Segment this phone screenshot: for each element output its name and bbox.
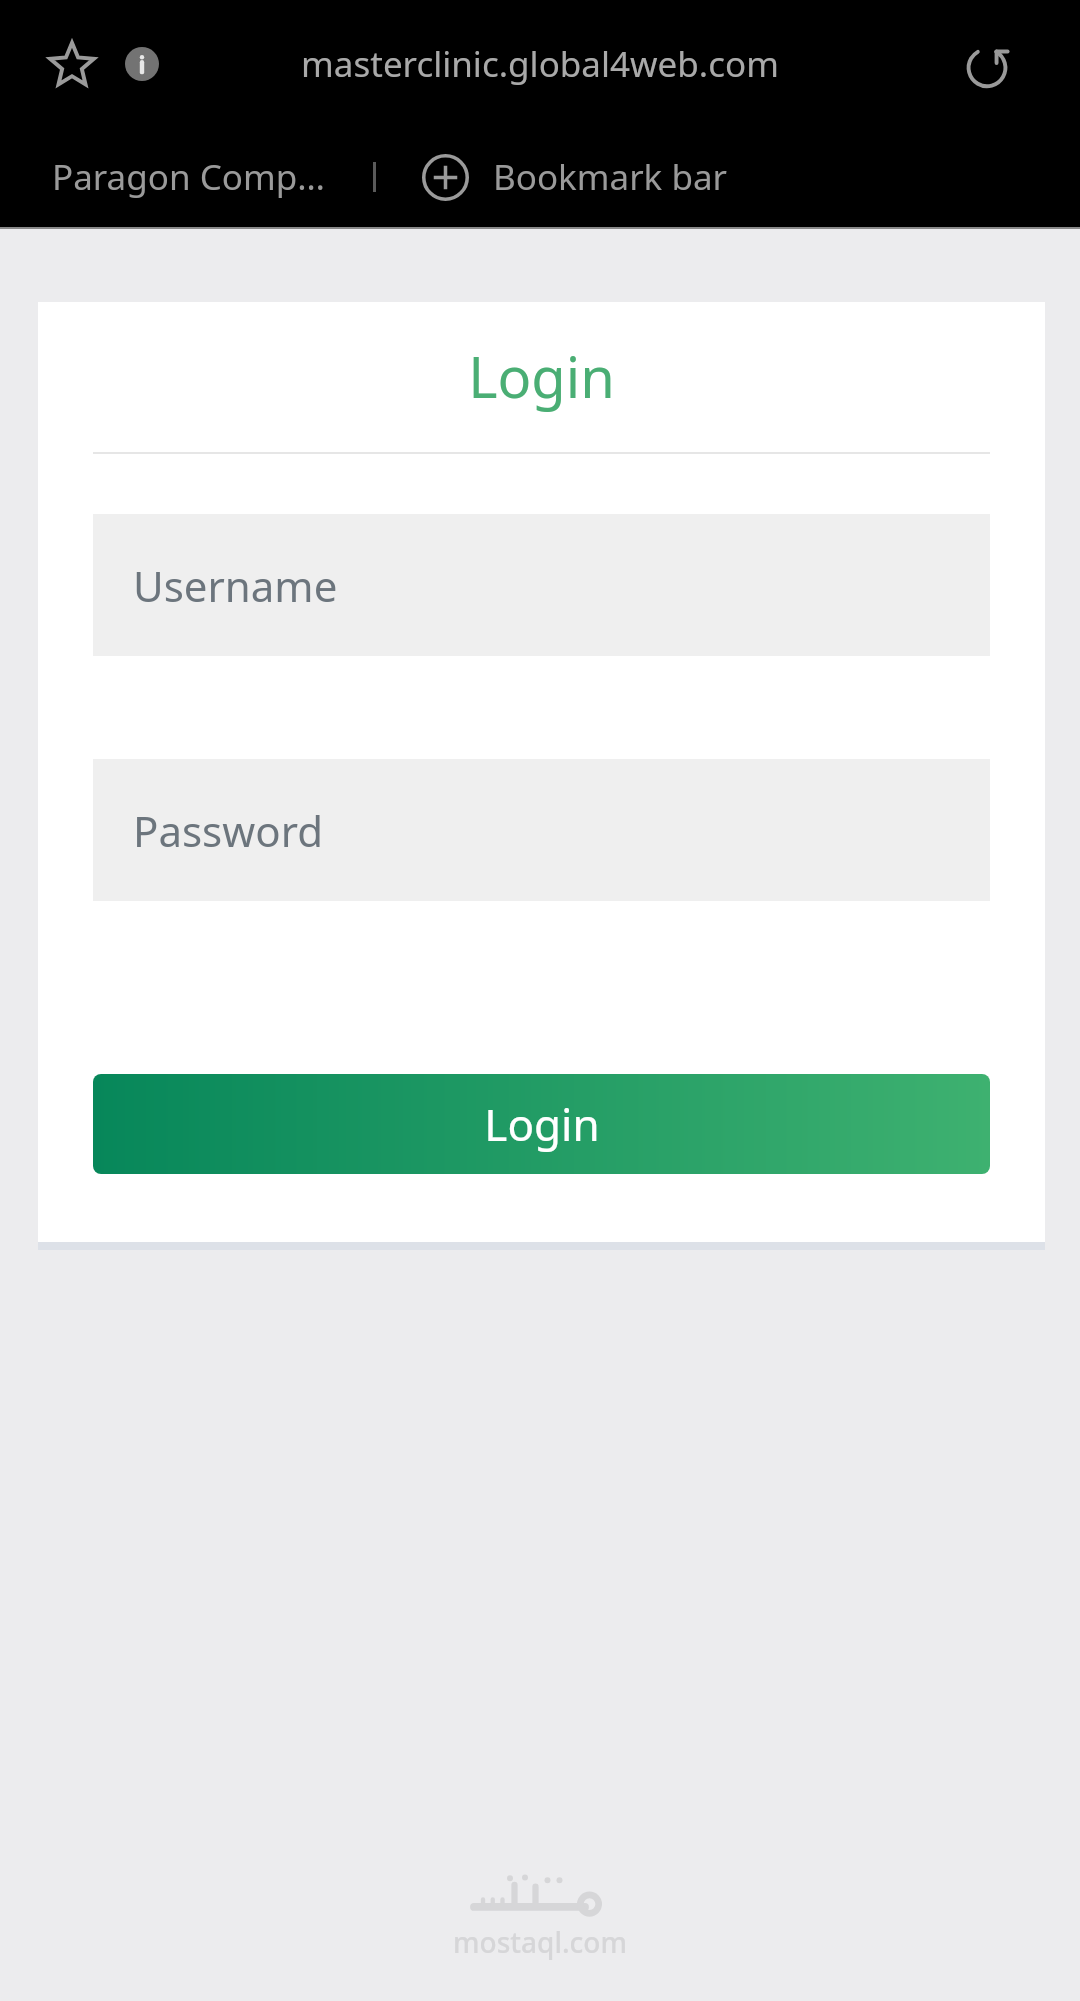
button[interactable]: Username: [93, 514, 990, 656]
button[interactable]: Bookmark: [44, 36, 100, 92]
button[interactable]: masterclinic.global4web.com: [200, 0, 880, 127]
button[interactable]: Password: [93, 759, 990, 901]
staticText: Password: [133, 802, 323, 859]
staticText: Username: [133, 557, 338, 614]
staticText: mostaql.com: [453, 1923, 627, 1961]
button[interactable]: Site information: [119, 41, 165, 87]
button[interactable]: Login: [93, 1074, 990, 1174]
staticText: Login: [484, 1094, 600, 1154]
button[interactable]: Reload: [958, 36, 1016, 94]
staticText: Bookmark bar: [493, 153, 728, 201]
staticText: Login: [468, 338, 615, 414]
button[interactable]: Paragon Comp…: [52, 153, 325, 201]
staticText: masterclinic.global4web.com: [301, 40, 779, 88]
button[interactable]: Bookmark bar: [422, 153, 728, 201]
staticText: Paragon Comp…: [52, 153, 325, 201]
